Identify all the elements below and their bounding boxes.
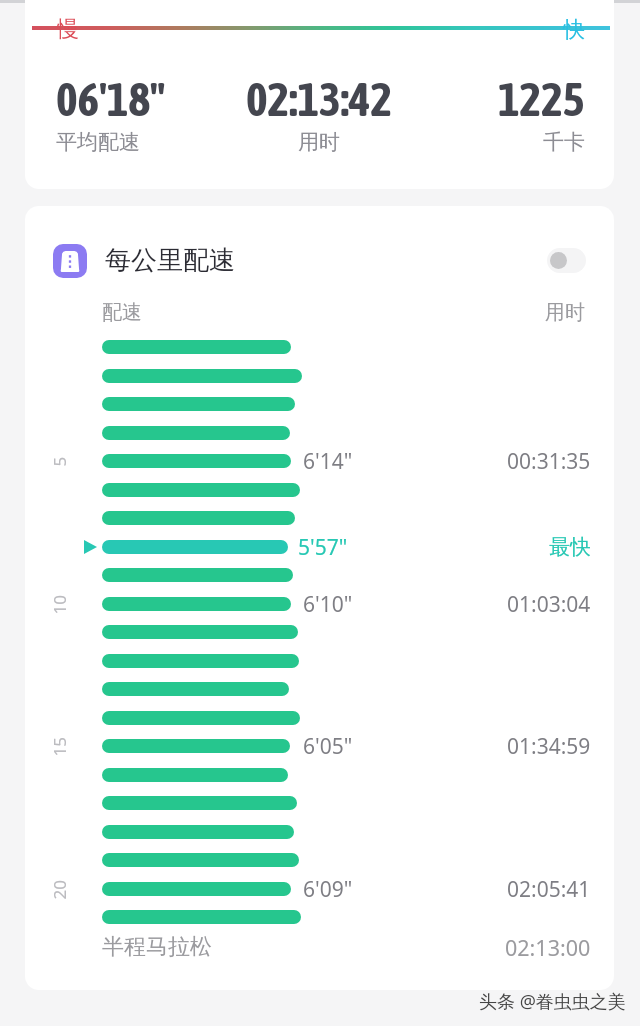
staticText: 6'14" xyxy=(303,447,353,476)
staticText: 千卡 xyxy=(543,129,585,155)
staticText: 用时 xyxy=(545,300,585,325)
staticText: 配速 xyxy=(102,300,142,325)
staticText: 02:05:41 xyxy=(507,875,591,904)
staticText: 20 xyxy=(47,879,70,899)
staticText: 头条 @眷虫虫之美 xyxy=(479,989,626,1014)
staticText: 1225 xyxy=(498,73,585,126)
staticText: 00:31:35 xyxy=(507,447,591,476)
staticText: 15 xyxy=(47,736,70,756)
staticText: 01:03:04 xyxy=(507,590,591,619)
staticText: 6'10" xyxy=(303,590,353,619)
button[interactable]: Toggle per-kilometre pace xyxy=(547,248,586,273)
staticText: 慢 xyxy=(57,15,79,43)
staticText: 快 xyxy=(563,16,585,44)
staticText: 半程马拉松 xyxy=(102,933,212,961)
staticText: 用时 xyxy=(298,129,340,155)
staticText: 每公里配速 xyxy=(105,244,235,277)
staticText: 02:13:00 xyxy=(505,933,591,962)
staticText: 5'57" xyxy=(298,533,348,562)
staticText: 6'05" xyxy=(303,732,353,761)
staticText: 6'09" xyxy=(303,875,353,904)
staticText: 01:34:59 xyxy=(507,732,591,761)
button[interactable]: 慢 xyxy=(25,0,614,189)
staticText: 最快 xyxy=(549,534,591,560)
staticText: 06'18" xyxy=(56,73,166,126)
staticText: 平均配速 xyxy=(56,129,140,155)
staticText: 02:13:42 xyxy=(246,73,393,126)
button[interactable]: 每公里配速 xyxy=(25,206,614,315)
staticText: 10 xyxy=(47,594,70,614)
staticText: 5 xyxy=(47,456,70,466)
